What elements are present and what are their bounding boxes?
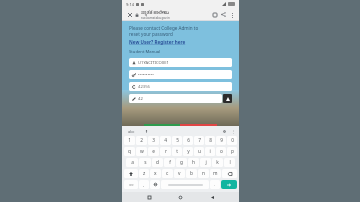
button[interactable]: New User? Register here xyxy=(129,39,186,45)
button[interactable]: x xyxy=(150,169,161,178)
button[interactable]: Share xyxy=(219,10,228,19)
staticText: ಅಆ xyxy=(129,183,134,186)
button[interactable]: •••••••••• xyxy=(129,70,232,79)
button[interactable]: 7 xyxy=(194,136,204,145)
staticText: 3 xyxy=(152,137,155,144)
staticText: 4 xyxy=(164,137,167,144)
button[interactable]: Submit xyxy=(223,94,232,103)
button[interactable]: e xyxy=(148,147,159,156)
staticText: U1YACITICO0E1 xyxy=(138,60,169,66)
button[interactable]: b xyxy=(186,169,197,178)
button[interactable]: 42 xyxy=(129,94,222,103)
button[interactable]: z xyxy=(139,169,149,178)
button[interactable]: . xyxy=(210,180,220,189)
button[interactable]: a xyxy=(126,158,138,167)
button[interactable]: q xyxy=(124,147,135,156)
staticText: 42 xyxy=(138,96,143,102)
staticText: 9:14 xyxy=(126,2,134,7)
button[interactable]: k xyxy=(212,158,223,167)
button[interactable]: 8 xyxy=(205,136,215,145)
button[interactable]: Enter xyxy=(221,180,237,189)
staticText: i xyxy=(209,148,211,155)
button[interactable]: u xyxy=(194,147,204,156)
staticText: k xyxy=(216,159,219,166)
staticText: j xyxy=(205,159,207,166)
staticText: l xyxy=(229,159,231,166)
button[interactable]: 42356 xyxy=(129,82,232,91)
button[interactable]: 2 xyxy=(136,136,147,145)
staticText: ⋮ xyxy=(231,129,235,134)
staticText: d xyxy=(156,159,159,166)
button[interactable]: 4 xyxy=(160,136,171,145)
staticText: 9 xyxy=(220,137,223,144)
button[interactable]: Back xyxy=(208,193,217,202)
staticText: , xyxy=(143,182,145,188)
button[interactable]: v xyxy=(174,169,185,178)
button[interactable]: 6 xyxy=(183,136,193,145)
staticText: s xyxy=(144,159,147,166)
button[interactable]: 9 xyxy=(216,136,226,145)
staticText: ಸ್ನಾತಕ ಕಾಲೇಜು xyxy=(141,9,170,16)
staticText: m xyxy=(213,170,218,177)
staticText: t xyxy=(176,148,178,155)
staticText: p xyxy=(231,148,234,155)
button[interactable]: j xyxy=(200,158,211,167)
button[interactable]: g xyxy=(176,158,187,167)
button[interactable]: 3 xyxy=(148,136,159,145)
staticText: 6 xyxy=(187,137,190,144)
button[interactable]: p xyxy=(227,147,237,156)
button[interactable]: U1YACITICO0E1 xyxy=(129,58,232,67)
button[interactable]: r xyxy=(160,147,171,156)
button[interactable]: m xyxy=(210,169,221,178)
button[interactable]: 0 xyxy=(227,136,237,145)
button[interactable] xyxy=(150,180,160,189)
button[interactable]: n xyxy=(198,169,209,178)
staticText: n xyxy=(202,170,205,177)
button[interactable]: i xyxy=(205,147,215,156)
button[interactable]: More options xyxy=(228,11,236,19)
button[interactable]: h xyxy=(188,158,199,167)
staticText: 42356 xyxy=(138,84,150,90)
staticText: w xyxy=(140,148,144,155)
button[interactable]: s xyxy=(139,158,151,167)
staticText: a xyxy=(131,159,134,166)
button[interactable]: More xyxy=(230,128,236,134)
button[interactable]: , xyxy=(139,180,149,189)
button[interactable]: 1 xyxy=(124,136,135,145)
button[interactable]: Home xyxy=(176,193,185,202)
button[interactable] xyxy=(124,169,138,178)
button[interactable]: o xyxy=(216,147,226,156)
button[interactable]: ಅಆ xyxy=(124,180,138,189)
staticText: Please contact College Admin to reset yo… xyxy=(129,25,199,37)
button[interactable]: Settings xyxy=(221,128,227,134)
button[interactable]: w xyxy=(136,147,147,156)
button[interactable]: t xyxy=(172,147,182,156)
staticText: x xyxy=(154,170,157,177)
button[interactable]: d xyxy=(152,158,163,167)
button[interactable]: Tabs xyxy=(210,10,219,19)
staticText: e xyxy=(152,148,155,155)
staticText: Student Manual xyxy=(129,49,161,55)
staticText: f xyxy=(169,159,171,166)
staticText: 5 xyxy=(176,137,179,144)
staticText: g xyxy=(180,159,183,166)
button[interactable]: Recents xyxy=(145,193,154,202)
staticText: 0 xyxy=(231,137,234,144)
staticText: . xyxy=(214,182,216,188)
button[interactable] xyxy=(161,180,209,189)
button[interactable]: ಸ್ನಾತಕ ಕಾಲೇಜು xyxy=(141,9,210,20)
staticText: u xyxy=(198,148,201,155)
button[interactable]: f xyxy=(164,158,175,167)
button[interactable]: l xyxy=(224,158,235,167)
staticText: sso.karnataka.gov.in xyxy=(141,16,170,20)
button[interactable]: Close xyxy=(125,10,134,19)
button[interactable]: 5 xyxy=(172,136,182,145)
staticText: y xyxy=(187,148,190,155)
button[interactable]: abc xyxy=(125,129,138,134)
button[interactable]: y xyxy=(183,147,193,156)
staticText: •••••••••• xyxy=(138,72,154,78)
button[interactable] xyxy=(222,169,237,178)
staticText: r xyxy=(165,148,167,155)
button[interactable]: c xyxy=(162,169,173,178)
button[interactable]: Voice input xyxy=(143,128,149,134)
